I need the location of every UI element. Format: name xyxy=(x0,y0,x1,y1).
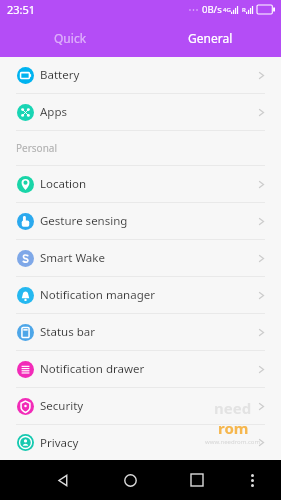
button[interactable]: Status bar xyxy=(0,314,281,350)
staticText: Smart Wake xyxy=(40,250,105,266)
button[interactable]: Notification manager xyxy=(0,277,281,313)
staticText: rom xyxy=(218,418,249,438)
button[interactable]: Gesture sensing xyxy=(0,203,281,239)
staticText: Gesture sensing xyxy=(40,213,128,229)
staticText: need xyxy=(214,398,252,418)
staticText: Privacy xyxy=(40,435,79,451)
button[interactable]: Notification drawer xyxy=(0,351,281,387)
button[interactable]: More options xyxy=(238,466,266,494)
button[interactable]: Smart Wake xyxy=(0,240,281,276)
button[interactable]: Home xyxy=(113,463,147,497)
button[interactable]: Battery xyxy=(0,57,281,93)
staticText: Apps xyxy=(40,104,68,120)
staticText: Location xyxy=(40,176,87,192)
staticText: General xyxy=(188,30,233,46)
staticText: Quick xyxy=(54,30,87,46)
staticText: 4G xyxy=(223,6,231,14)
staticText: Security xyxy=(40,398,84,414)
staticText: 0B/s xyxy=(202,3,222,16)
button[interactable]: Quick xyxy=(0,19,140,57)
button[interactable]: Apps xyxy=(0,94,281,130)
staticText: R xyxy=(242,6,246,14)
staticText: www.needrom.com xyxy=(205,438,261,446)
staticText: Notification manager xyxy=(40,287,155,303)
button[interactable]: Back xyxy=(46,463,80,497)
staticText: Status bar xyxy=(40,324,95,340)
button[interactable]: Privacy xyxy=(0,425,281,460)
button[interactable]: Location xyxy=(0,166,281,202)
staticText: Battery xyxy=(40,67,80,83)
staticText: Personal xyxy=(16,141,58,155)
staticText: Notification drawer xyxy=(40,361,145,377)
button[interactable]: General xyxy=(140,19,281,57)
button[interactable]: Security xyxy=(0,388,281,424)
button[interactable]: Recents xyxy=(180,463,214,497)
staticText: 23:51 xyxy=(7,2,36,17)
